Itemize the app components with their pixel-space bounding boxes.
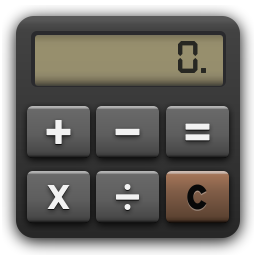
button[interactable]: Minus [96,106,159,158]
button[interactable]: Clear [166,171,229,223]
button[interactable]: Plus [27,106,90,158]
button[interactable]: Equals [166,106,229,158]
button[interactable]: Multiply [27,171,90,223]
button[interactable]: Divide [96,171,159,223]
